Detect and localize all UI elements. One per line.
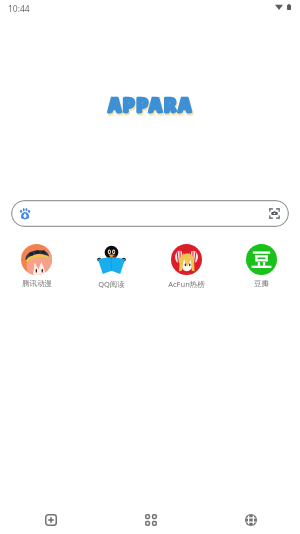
button[interactable]: Baidu search engine [15, 201, 35, 226]
staticText: 腾讯动漫 [22, 279, 52, 288]
staticText: APPARA [107, 93, 193, 118]
staticText: 10:44 [8, 3, 30, 15]
button[interactable]: 腾讯动漫 [0, 244, 74, 288]
button[interactable]: Search [11, 200, 289, 227]
staticText: 豆瓣 [254, 279, 269, 288]
button[interactable]: Apps [100, 500, 200, 534]
staticText: QQ阅读 [98, 279, 125, 289]
button[interactable]: Add [0, 500, 100, 534]
button[interactable]: 豆瓣 [224, 244, 299, 288]
staticText: AcFun热榜 [168, 279, 205, 289]
button[interactable]: QQ阅读 [74, 244, 149, 289]
button[interactable]: Browser [200, 500, 300, 534]
button[interactable]: APPARA [107, 93, 193, 118]
button[interactable]: AcFun热榜 [149, 244, 224, 289]
button[interactable]: Scan [264, 201, 284, 226]
staticText: APPARA [108, 95, 194, 120]
